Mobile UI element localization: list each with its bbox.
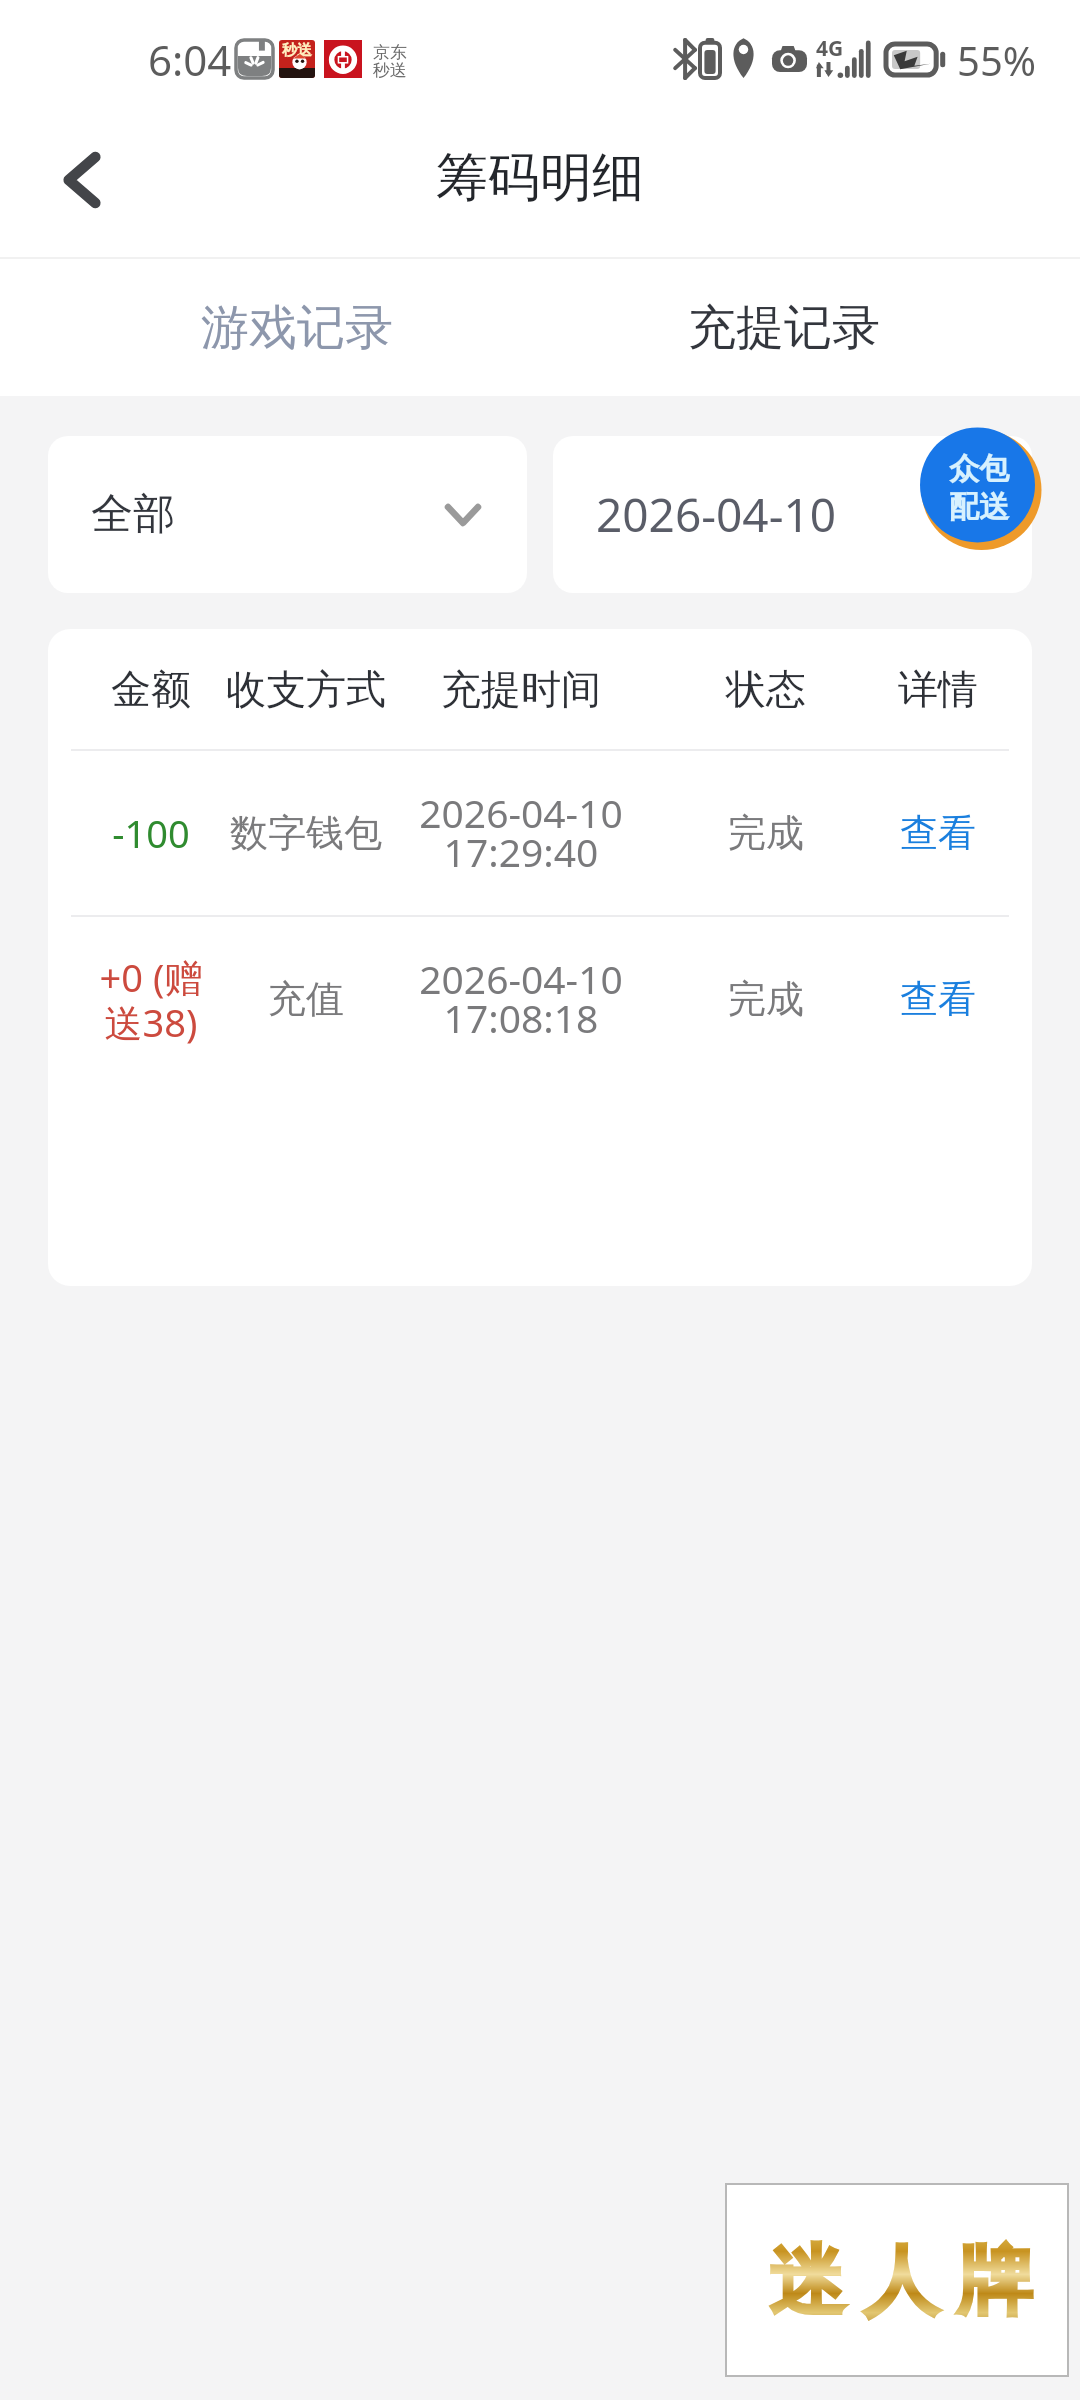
staticText: 配送 [949,488,1009,526]
staticText: 4G [816,34,844,63]
staticText: 查看 [900,809,976,857]
staticText: 筹码明细 [436,145,644,211]
staticText: 充值 [268,975,344,1023]
staticText: 众包 [949,450,1009,488]
staticText: 完成 [728,975,804,1023]
button[interactable]: +0 (赠送38) [48,917,1032,1081]
staticText: 查看 [900,975,976,1023]
staticText: 2026-04-10 17:29:40 [419,786,623,878]
button[interactable]: 2026-04-10 [553,436,1032,593]
staticText: 游戏记录 [201,298,393,358]
button[interactable]: 迷人牌 广告 [727,2185,1067,2375]
button[interactable]: 充提记录 [644,259,924,396]
button[interactable]: 全部 [48,436,527,593]
staticText: 京东 秒送 [373,42,407,81]
staticText: 充提记录 [688,298,880,358]
staticText: 全部 [91,488,175,541]
staticText: 充提时间 [441,664,601,714]
button[interactable]: 游戏记录 [157,259,437,396]
staticText: 2026-04-10 17:08:18 [419,952,623,1044]
staticText: 状态 [726,664,806,714]
staticText: 完成 [728,809,804,857]
staticText: 收支方式 [226,664,386,714]
staticText: 数字钱包 [230,809,382,857]
button[interactable]: 查看 [843,917,1032,1081]
button[interactable]: -100 [48,751,1032,915]
button[interactable]: Back [37,129,127,231]
button[interactable]: 众包配送 [918,426,1042,550]
staticText: 2026-04-10 [596,483,837,546]
button[interactable]: 查看 [843,751,1032,915]
staticText: 6:04 [148,31,232,88]
staticText: +0 (赠送38) [90,951,212,1048]
staticText: 详情 [898,664,978,714]
staticText: 55% [957,33,1036,87]
staticText: -100 [112,807,190,859]
staticText: 金额 [111,664,191,714]
staticText: 迷人牌 [760,2234,1042,2330]
staticText: 秒送 [282,41,312,60]
